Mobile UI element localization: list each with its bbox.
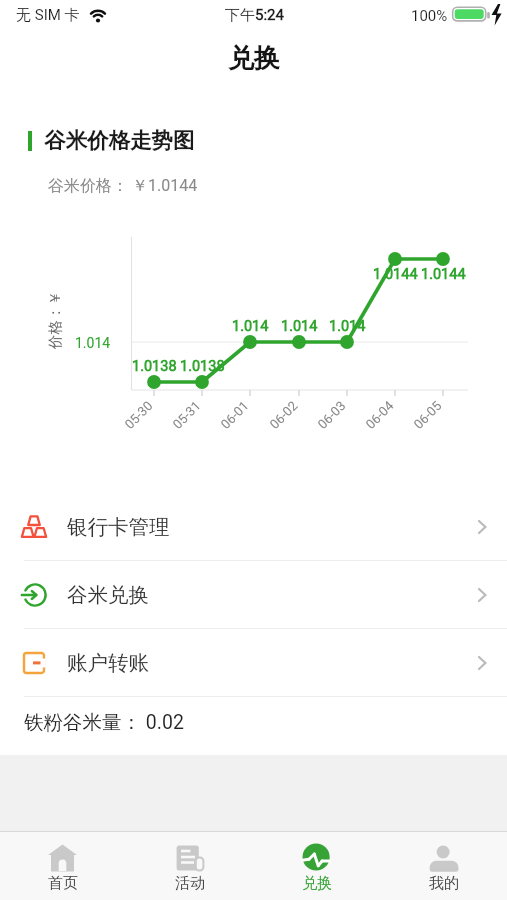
staticText: 账户转账 xyxy=(67,650,149,676)
staticText: 兑换 xyxy=(228,42,280,75)
staticText: 1.0138 xyxy=(132,358,177,375)
staticText: 1.0144 xyxy=(421,266,466,283)
staticText: 无 SIM 卡 xyxy=(16,6,80,25)
staticText: 06-04 xyxy=(363,398,397,432)
staticText: 铁粉谷米量： 0.02 xyxy=(24,710,184,735)
staticText: 价格：￥ xyxy=(46,291,64,349)
button[interactable]: 账户转账 xyxy=(0,629,507,696)
button[interactable]: 活动 xyxy=(150,836,230,898)
staticText: 我的 xyxy=(429,874,459,893)
staticText: 下午5:24 xyxy=(225,6,284,25)
staticText: 06-02 xyxy=(267,398,301,432)
staticText: 100% xyxy=(411,7,448,25)
staticText: 1.014 xyxy=(281,318,318,335)
staticText: 1.014 xyxy=(329,318,366,335)
staticText: 1.014 xyxy=(75,335,111,351)
button[interactable]: 银行卡管理 xyxy=(0,493,507,560)
button[interactable]: 首页 xyxy=(23,836,103,898)
staticText: 兑换 xyxy=(302,874,332,893)
staticText: 活动 xyxy=(175,874,205,893)
staticText: 谷米价格： ￥1.0144 xyxy=(48,176,198,196)
button[interactable]: 谷米兑换 xyxy=(0,561,507,628)
staticText: 谷米价格走势图 xyxy=(44,127,195,154)
staticText: 05-30 xyxy=(122,398,156,432)
staticText: 06-05 xyxy=(411,398,445,432)
staticText: 银行卡管理 xyxy=(67,514,170,540)
staticText: 1.014 xyxy=(232,318,269,335)
button[interactable]: 兑换 xyxy=(277,836,357,898)
staticText: 1.0144 xyxy=(373,266,418,283)
staticText: 1.0138 xyxy=(180,358,225,375)
button[interactable]: 我的 xyxy=(404,836,484,898)
staticText: 06-03 xyxy=(315,398,349,432)
staticText: 首页 xyxy=(48,874,78,893)
staticText: 06-01 xyxy=(218,398,252,432)
staticText: 05-31 xyxy=(170,398,204,432)
staticText: 谷米兑换 xyxy=(67,582,149,608)
